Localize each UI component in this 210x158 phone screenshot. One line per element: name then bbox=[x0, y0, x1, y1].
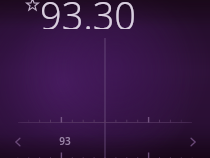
staticText: 93.30 bbox=[40, 0, 137, 29]
button[interactable]: 93 bbox=[54, 134, 76, 148]
button[interactable]: Next station bbox=[181, 130, 205, 154]
button[interactable]: Previous station bbox=[6, 130, 30, 154]
button[interactable]: 93.30 bbox=[40, 0, 168, 29]
staticText: 93 bbox=[59, 134, 71, 148]
button[interactable]: Favourite station bbox=[23, 0, 43, 15]
